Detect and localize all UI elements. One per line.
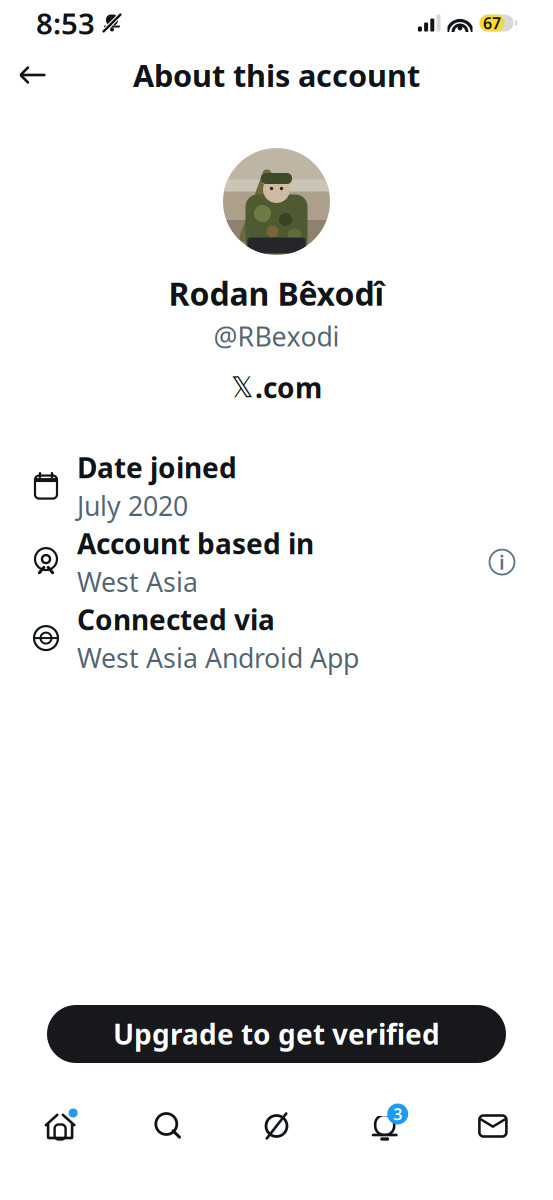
- staticText: @RBexodi: [213, 318, 339, 354]
- staticText: July 2020: [77, 488, 188, 523]
- staticText: Upgrade to get verified: [113, 1015, 440, 1053]
- button[interactable]: Grok: [222, 1095, 331, 1157]
- button[interactable]: About account location: [480, 540, 524, 584]
- staticText: About this account: [133, 55, 420, 95]
- staticText: 𝕏: [231, 372, 254, 403]
- button[interactable]: Search: [114, 1095, 222, 1157]
- staticText: Account based in: [77, 525, 314, 562]
- button[interactable]: Upgrade to get verified: [47, 1005, 506, 1063]
- staticText: .com: [255, 369, 322, 406]
- button[interactable]: Notifications, 3 new: [331, 1095, 439, 1157]
- staticText: i: [499, 549, 505, 575]
- staticText: West Asia: [77, 564, 198, 599]
- staticText: Date joined: [77, 449, 237, 486]
- button[interactable]: Back: [8, 50, 58, 100]
- button[interactable]: Messages: [439, 1095, 547, 1157]
- button[interactable]: Home: [6, 1095, 114, 1157]
- staticText: 67: [483, 12, 501, 34]
- staticText: 3: [393, 1103, 402, 1125]
- staticText: Connected via: [77, 601, 275, 638]
- staticText: West Asia Android App: [77, 640, 359, 675]
- staticText: 8:53: [36, 3, 95, 42]
- staticText: Rodan Bêxodî: [168, 272, 384, 314]
